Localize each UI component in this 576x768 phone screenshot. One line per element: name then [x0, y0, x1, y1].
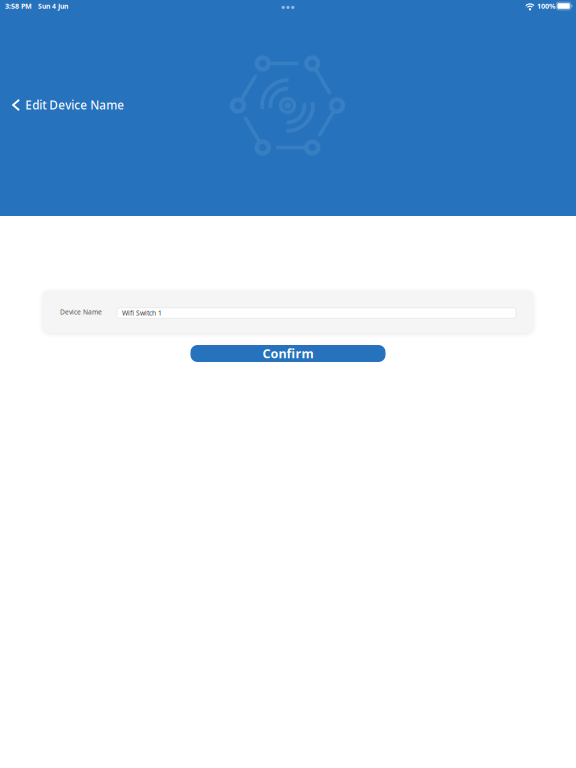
staticText: 3:58 PM — [5, 1, 32, 11]
button[interactable]: Confirm — [190, 345, 385, 362]
staticText: Edit Device Name — [25, 97, 124, 113]
staticText: 100% — [537, 1, 555, 11]
staticText: Device Name — [60, 307, 102, 317]
staticText: Wifi Switch 1 — [122, 308, 162, 318]
staticText: Confirm — [262, 345, 313, 362]
staticText: Sun 4 Jun — [38, 1, 68, 11]
button[interactable]: Edit Device Name — [0, 92, 132, 118]
